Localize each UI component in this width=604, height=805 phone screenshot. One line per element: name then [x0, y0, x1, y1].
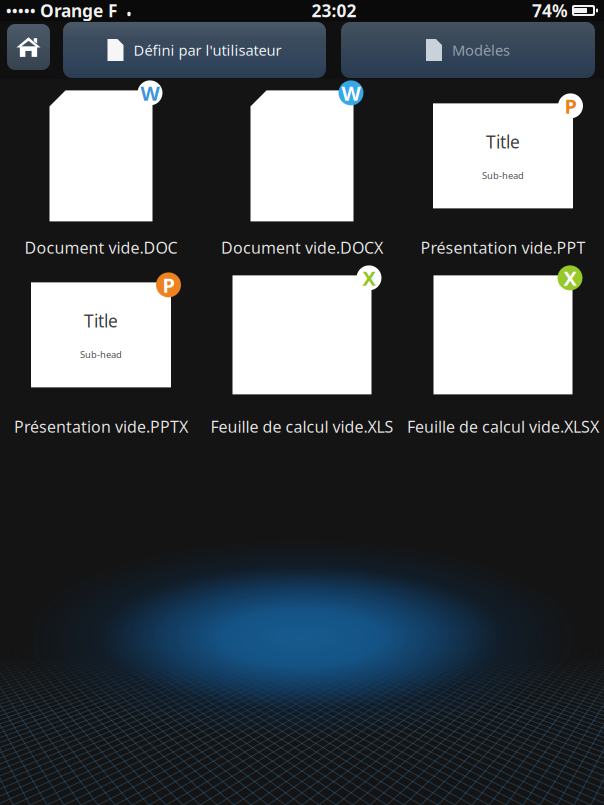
staticText: Title	[486, 130, 520, 153]
staticText: Document vide.DOCX	[221, 237, 383, 258]
button[interactable]: X	[201, 265, 402, 441]
staticText: Feuille de calcul vide.XLSX	[407, 416, 599, 437]
staticText: Feuille de calcul vide.XLS	[210, 416, 393, 437]
button[interactable]: W	[201, 86, 402, 262]
staticText: Document vide.DOC	[24, 237, 177, 258]
button[interactable]: W	[0, 86, 201, 262]
staticText: 74%	[532, 0, 568, 22]
staticText: Sub-head	[80, 348, 122, 361]
button[interactable]: Modèles	[341, 22, 595, 78]
staticText: Modèles	[452, 40, 510, 60]
button[interactable]: Title	[402, 86, 603, 262]
staticText: P	[162, 272, 174, 298]
staticText: X	[362, 265, 375, 291]
staticText: X	[563, 265, 576, 291]
button[interactable]: X	[402, 265, 603, 441]
staticText: 23:02	[311, 0, 356, 22]
staticText: Title	[84, 309, 118, 332]
button[interactable]: Défini par l'utilisateur	[63, 22, 326, 78]
staticText: W	[140, 80, 159, 106]
staticText: W	[341, 80, 360, 106]
staticText: Sub-head	[482, 169, 524, 182]
staticText: P	[564, 93, 576, 119]
staticText: Présentation vide.PPTX	[14, 416, 188, 437]
staticText: Défini par l'utilisateur	[133, 40, 281, 60]
button[interactable]: Home	[0, 21, 63, 70]
staticText: •••••	[6, 1, 36, 20]
button[interactable]: Title	[0, 265, 201, 441]
staticText: Présentation vide.PPT	[420, 237, 585, 258]
staticText: Orange F	[40, 0, 118, 22]
